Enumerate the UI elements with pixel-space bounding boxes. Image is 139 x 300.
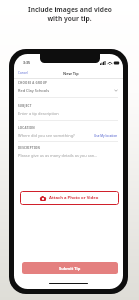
other: Signal, Wi-Fi and battery status xyxy=(100,61,120,65)
staticText: Red Clay Schools xyxy=(18,88,50,93)
button[interactable]: Attach a Photo or Video xyxy=(20,191,119,205)
staticText: Cancel xyxy=(18,71,28,75)
staticText: Use My location xyxy=(94,134,118,138)
staticText: SUBJECT xyxy=(18,104,32,108)
staticText: Submit Tip xyxy=(59,266,81,271)
staticText: LOCATION xyxy=(18,126,35,130)
button[interactable]: Use My location xyxy=(94,134,118,138)
staticText: New Tip xyxy=(63,71,79,76)
staticText: CHOOSE A GROUP xyxy=(18,81,48,85)
staticText: Please give us as many details as you ca… xyxy=(18,153,98,158)
staticText: DESCRIPTION xyxy=(18,146,41,150)
staticText: Attach a Photo or Video xyxy=(49,195,99,201)
staticText: with your tip. xyxy=(47,14,92,23)
staticText: Enter a tip description xyxy=(18,111,59,116)
staticText: Where did you see something? xyxy=(18,133,75,138)
staticText: Include images and video xyxy=(28,5,112,14)
button[interactable]: Submit Tip xyxy=(22,262,118,274)
staticText: 3:35 xyxy=(23,60,31,65)
button[interactable]: Cancel xyxy=(18,71,28,75)
